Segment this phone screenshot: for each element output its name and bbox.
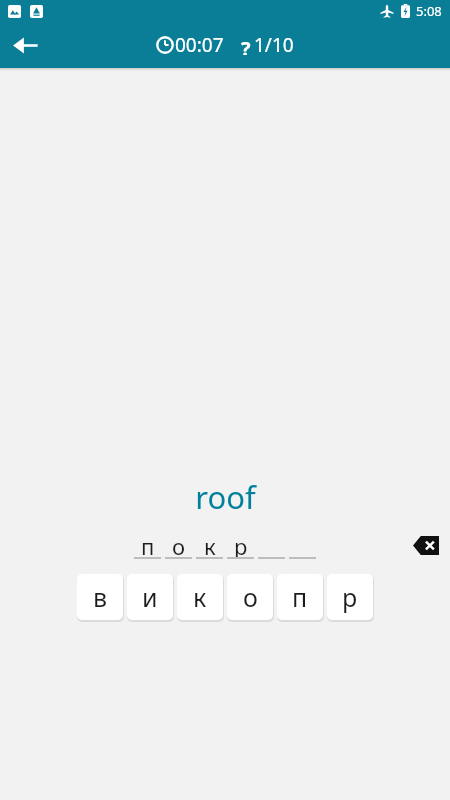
button[interactable]: и [127,574,173,620]
button[interactable]: Back [3,23,47,67]
staticText: п [141,531,155,557]
staticText: о [172,531,186,557]
button[interactable]: в [77,574,123,620]
staticText: к [204,531,216,557]
button[interactable]: к [177,574,223,620]
staticText: 1/10 [254,32,294,58]
staticText: roof [195,476,256,518]
staticText: ? [241,35,251,55]
button[interactable]: о [227,574,273,620]
staticText: в [93,580,108,614]
staticText: 5:08 [416,2,442,20]
staticText: 00:07 [175,32,224,58]
staticText: и [142,580,158,614]
staticText: о [243,580,258,614]
button[interactable]: р [327,574,373,620]
staticText: р [342,580,358,614]
staticText: к [193,580,207,614]
button[interactable]: п [277,574,323,620]
button[interactable]: Backspace [407,526,445,564]
staticText: р [234,531,248,557]
staticText: п [292,580,308,614]
